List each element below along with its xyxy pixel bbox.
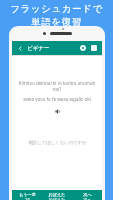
staticText: フラッシュカードで [10,3,103,15]
button[interactable]: Play audio [53,107,62,116]
staticText: ビギナー [27,45,50,52]
staticText: おぼえた [48,197,66,200]
staticText: もう一度 [19,192,36,197]
staticText: Kimitsu dekinai ki ni kanira anumah nai? [18,80,96,92]
staticText: 単語を復習 [31,16,82,28]
staticText: sewa yoso fa fe wasa wgalki oki [23,96,91,102]
button[interactable]: おぼえた [42,190,72,200]
button[interactable]: もう一度 [12,190,42,200]
button[interactable]: Kimitsu dekinai ki ni kanira anumah nai? [12,56,102,190]
staticText: 次へ [83,192,92,197]
staticText: おぼえた [48,192,66,197]
button[interactable]: Shuffle [78,43,88,53]
staticText: 次へ [83,197,92,200]
button[interactable]: Back [15,43,25,53]
button[interactable]: 次へ [72,190,102,200]
button[interactable]: More options [89,43,99,53]
staticText: 15 [25,197,30,200]
staticText: 翻訳してほしくないのですか [28,140,87,146]
